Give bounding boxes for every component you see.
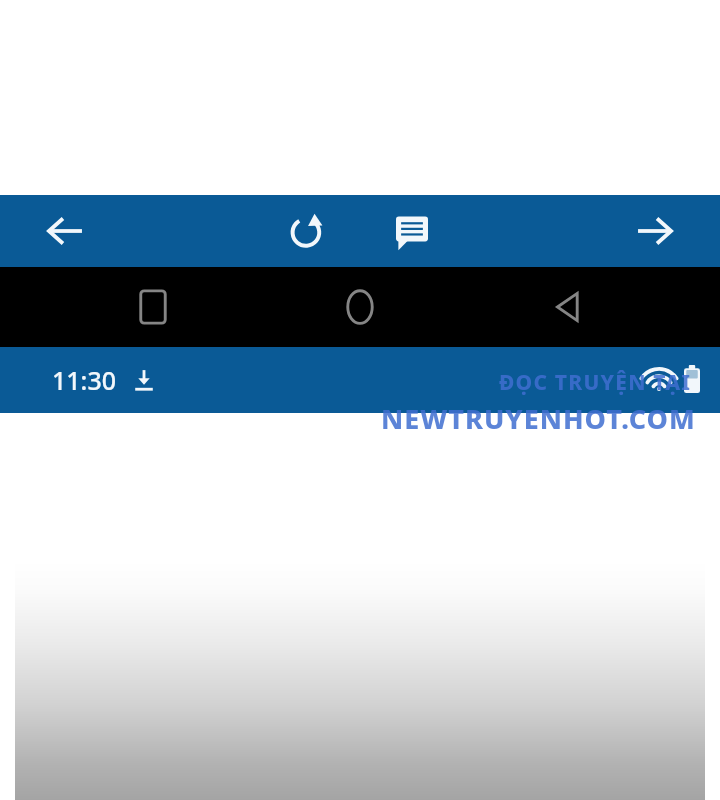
button[interactable]: Refresh: [271, 195, 343, 267]
button[interactable]: Comments: [376, 195, 448, 267]
button[interactable]: Back: [30, 195, 102, 267]
button[interactable]: Home: [324, 271, 396, 343]
staticText: NEWTRUYENHOT.COM: [381, 400, 696, 437]
button[interactable]: Back: [531, 271, 603, 343]
staticText: ĐỌC TRUYỆN TẠI: [499, 368, 692, 397]
button[interactable]: Recent apps: [117, 271, 189, 343]
button[interactable]: Forward: [618, 195, 690, 267]
staticText: 11:30: [52, 363, 117, 397]
